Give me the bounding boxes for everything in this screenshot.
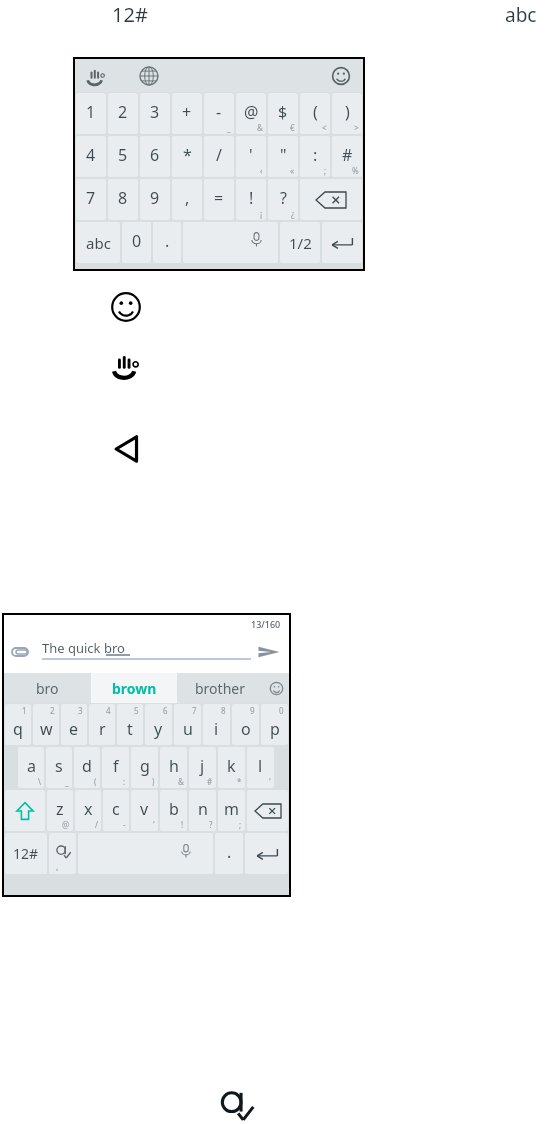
staticText: ': [249, 144, 253, 166]
staticText: ,: [185, 187, 190, 209]
button[interactable]: ,: [172, 179, 202, 220]
button[interactable]: 8: [203, 704, 230, 745]
button[interactable]: Send: [257, 640, 281, 664]
button[interactable]: bro: [4, 673, 91, 703]
button[interactable]: 0: [122, 222, 151, 263]
button[interactable]: /: [204, 136, 234, 177]
staticText: ": [280, 144, 287, 166]
button[interactable]: Shift: [5, 790, 45, 831]
staticText: .: [165, 230, 170, 252]
button[interactable]: Language: [49, 833, 76, 874]
button[interactable]: Enter: [245, 833, 288, 874]
button[interactable]: brown: [91, 673, 177, 703]
button[interactable]: v: [131, 790, 158, 831]
button[interactable]: brother: [177, 673, 263, 703]
button[interactable]: 4: [89, 704, 115, 745]
button[interactable]: Handwriting: [83, 63, 109, 89]
button[interactable]: b: [160, 790, 187, 831]
button[interactable]: d: [74, 747, 100, 788]
button[interactable]: z: [47, 790, 73, 831]
button[interactable]: 7: [174, 704, 201, 745]
button[interactable]: l: [247, 747, 274, 788]
button[interactable]: n: [189, 790, 216, 831]
button[interactable]: m: [218, 790, 245, 831]
button[interactable]: Space: [78, 833, 213, 874]
staticText: brother: [195, 679, 245, 698]
button[interactable]: !: [236, 179, 266, 220]
button[interactable]: 9: [140, 179, 170, 220]
staticText: ?: [280, 187, 287, 209]
button[interactable]: ): [332, 93, 362, 134]
button[interactable]: 2: [108, 93, 138, 134]
button[interactable]: 9: [232, 704, 259, 745]
staticText: g: [140, 755, 150, 777]
button[interactable]: h: [160, 747, 187, 788]
button[interactable]: Enter: [322, 222, 362, 263]
button[interactable]: Backspace: [247, 790, 288, 831]
button[interactable]: :: [300, 136, 330, 177]
staticText: m: [224, 798, 239, 820]
button[interactable]: 3: [61, 704, 87, 745]
button[interactable]: -: [204, 93, 234, 134]
staticText: 12#: [112, 1, 148, 28]
staticText: 1: [22, 705, 27, 716]
staticText: ?: [209, 819, 213, 830]
button[interactable]: Letters: [76, 222, 120, 263]
button[interactable]: #: [332, 136, 362, 177]
button[interactable]: +: [172, 93, 202, 134]
button[interactable]: 4: [76, 136, 106, 177]
button[interactable]: 1: [5, 704, 31, 745]
button[interactable]: ': [236, 136, 266, 177]
button[interactable]: k: [218, 747, 245, 788]
button[interactable]: Page 1 of 2: [280, 222, 320, 263]
staticText: %: [352, 165, 359, 176]
staticText: l: [258, 755, 263, 777]
staticText: 3: [78, 705, 83, 716]
button[interactable]: .: [215, 833, 243, 874]
button[interactable]: s: [46, 747, 72, 788]
button[interactable]: 0: [261, 704, 288, 745]
button[interactable]: (: [300, 93, 330, 134]
staticText: 8: [118, 187, 128, 209]
staticText: e: [69, 718, 79, 740]
staticText: >: [354, 122, 359, 133]
button[interactable]: Attach: [10, 642, 30, 662]
button[interactable]: Emoji: [110, 291, 142, 323]
button[interactable]: Back: [110, 432, 144, 466]
button[interactable]: Emoji: [329, 64, 353, 88]
button[interactable]: @: [236, 93, 266, 134]
button[interactable]: 6: [140, 136, 170, 177]
button[interactable]: 6: [145, 704, 172, 745]
button[interactable]: Language: [137, 64, 161, 88]
button[interactable]: ?: [268, 179, 298, 220]
staticText: z: [56, 798, 64, 820]
button[interactable]: 5: [117, 704, 143, 745]
button[interactable]: c: [103, 790, 129, 831]
button[interactable]: Emoji: [263, 673, 289, 703]
button[interactable]: a: [18, 747, 44, 788]
button[interactable]: Backspace: [300, 179, 362, 220]
button[interactable]: 2: [33, 704, 59, 745]
button[interactable]: x: [75, 790, 101, 831]
button[interactable]: Symbols: [5, 833, 47, 874]
button[interactable]: 5: [108, 136, 138, 177]
button[interactable]: j: [189, 747, 216, 788]
button[interactable]: 1: [76, 93, 106, 134]
button[interactable]: f: [102, 747, 129, 788]
button[interactable]: 8: [108, 179, 138, 220]
button[interactable]: .: [153, 222, 181, 263]
button[interactable]: Space: [183, 222, 278, 263]
staticText: k: [227, 755, 236, 777]
button[interactable]: *: [172, 136, 202, 177]
button[interactable]: ": [268, 136, 298, 177]
staticText: c: [112, 798, 120, 820]
button[interactable]: g: [131, 747, 158, 788]
staticText: (: [313, 101, 318, 123]
button[interactable]: Handwriting: [110, 349, 142, 381]
button[interactable]: 3: [140, 93, 170, 134]
button[interactable]: $: [268, 93, 298, 134]
button[interactable]: =: [204, 179, 234, 220]
button[interactable]: 7: [76, 179, 106, 220]
staticText: «: [290, 165, 295, 176]
staticText: r: [99, 718, 106, 740]
